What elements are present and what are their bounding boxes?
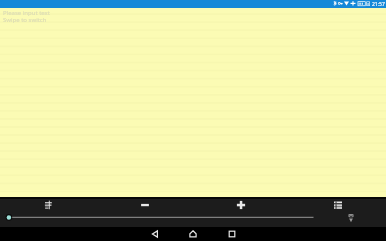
button[interactable]: Text size — [40, 196, 58, 214]
button[interactable]: Increase — [232, 196, 250, 214]
button[interactable]: Table — [329, 196, 347, 214]
staticText: Please input text — [3, 9, 50, 17]
staticText: 21:57 — [372, 1, 385, 8]
button[interactable]: Home — [179, 227, 207, 241]
button[interactable]: Recents — [218, 227, 246, 241]
button[interactable] — [2, 211, 320, 223]
button[interactable]: Decrease — [136, 196, 154, 214]
button[interactable]: Back — [141, 227, 169, 241]
button[interactable]: Hide keyboard — [344, 211, 358, 225]
staticText: Swipe to switch — [3, 16, 47, 24]
